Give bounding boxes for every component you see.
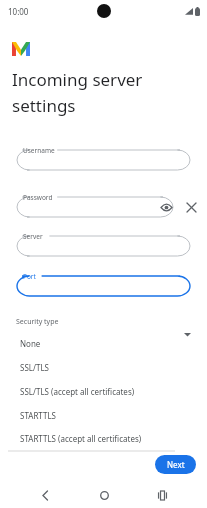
button[interactable]: STARTTLS — [8, 403, 175, 427]
button[interactable]: STARTTLS (accept all certificates) — [8, 427, 175, 450]
staticText: Incoming server — [12, 68, 143, 91]
button[interactable]: Next — [155, 455, 196, 474]
staticText: None — [20, 338, 41, 349]
button[interactable]: Password — [12, 192, 178, 222]
staticText: Security type — [16, 317, 59, 327]
button[interactable]: Back — [32, 482, 58, 508]
button[interactable]: Home — [91, 482, 117, 508]
button[interactable]: Recent apps — [149, 482, 175, 508]
staticText: Next — [167, 459, 185, 470]
button[interactable]: Open security type menu — [181, 328, 194, 341]
staticText: STARTTLS (accept all certificates) — [20, 433, 142, 444]
staticText: SSL/TLS (accept all certificates) — [20, 386, 135, 397]
button[interactable]: Server — [12, 231, 195, 261]
staticText: Server — [23, 232, 43, 241]
staticText: 10:00 — [8, 6, 29, 17]
staticText: SSL/TLS — [20, 362, 49, 373]
staticText: Password — [23, 193, 53, 202]
button[interactable]: None — [8, 331, 175, 355]
button[interactable]: Show password — [158, 199, 175, 216]
button[interactable]: SSL/TLS — [8, 355, 175, 379]
staticText: Username — [23, 146, 55, 155]
staticText: settings — [12, 94, 76, 117]
button[interactable]: Username — [12, 145, 195, 175]
button[interactable]: Clear password — [183, 199, 200, 216]
button[interactable]: SSL/TLS (accept all certificates) — [8, 379, 175, 403]
staticText: STARTTLS — [20, 410, 57, 421]
staticText: Port — [23, 272, 36, 281]
button[interactable]: Port — [12, 271, 195, 301]
